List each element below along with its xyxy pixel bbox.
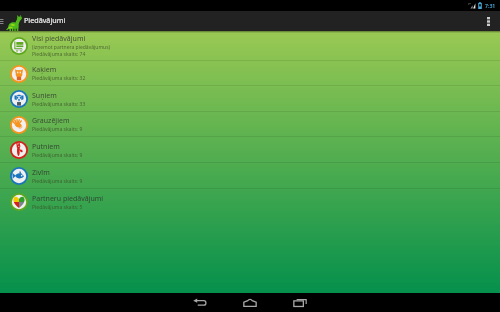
- button[interactable]: Grauzējiem: [0, 112, 500, 137]
- staticText: Grauzējiem: [32, 116, 70, 126]
- staticText: Piedāvājumi: [24, 15, 66, 25]
- button[interactable]: Visi piedāvājumi: [0, 31, 500, 61]
- staticText: Visi piedāvājumi: [32, 34, 86, 44]
- button[interactable]: Suņiem: [0, 86, 500, 112]
- staticText: Piedāvājuma skaits: 5: [32, 204, 83, 211]
- staticText: Piedāvājuma skaits: 9: [32, 126, 83, 133]
- staticText: 7:31: [485, 2, 496, 9]
- button[interactable]: Back: [175, 293, 225, 312]
- staticText: Piedāvājuma skaits: 9: [32, 152, 83, 159]
- staticText: Kaķiem: [32, 65, 57, 75]
- staticText: Piedāvājuma skaits: 9: [32, 178, 83, 185]
- button[interactable]: Recent apps: [275, 293, 325, 312]
- button[interactable]: Open navigation drawer: [0, 11, 5, 31]
- staticText: Suņiem: [32, 91, 57, 101]
- button[interactable]: Zivīm: [0, 163, 500, 189]
- staticText: (izņemot partnera piedāvājumus): [32, 44, 111, 51]
- button[interactable]: Putniem: [0, 137, 500, 163]
- staticText: Piedāvājuma skaits: 32: [32, 75, 86, 82]
- staticText: Piedāvājuma skaits: 33: [32, 101, 86, 108]
- button[interactable]: More options: [480, 11, 500, 31]
- button[interactable]: Partneru piedāvājumi: [0, 189, 500, 215]
- button[interactable]: Kaķiem: [0, 61, 500, 86]
- staticText: Piedāvājuma skaits: 74: [32, 51, 86, 58]
- staticText: Partneru piedāvājumi: [32, 194, 104, 204]
- button[interactable]: Home: [225, 293, 275, 312]
- staticText: Zivīm: [32, 168, 50, 178]
- staticText: Putniem: [32, 142, 60, 152]
